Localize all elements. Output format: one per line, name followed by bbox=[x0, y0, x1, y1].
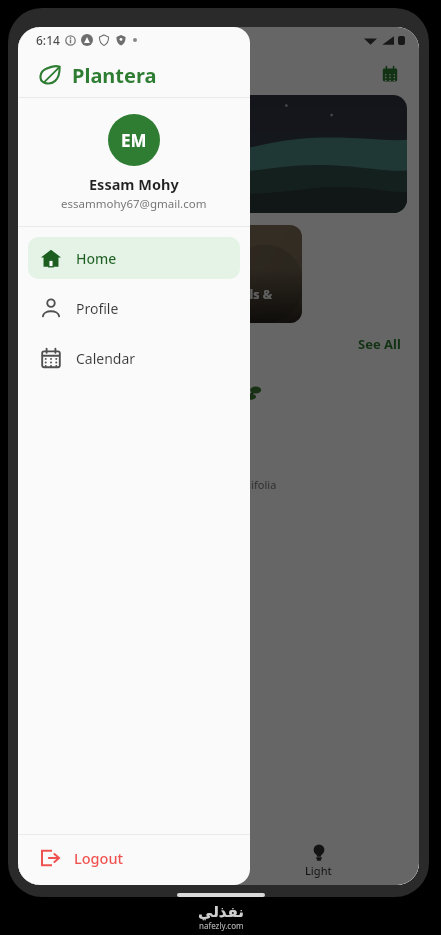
staticText: Flowers bbox=[38, 286, 87, 303]
button[interactable]: See All bbox=[354, 331, 405, 357]
staticText: Plantera bbox=[72, 62, 157, 89]
staticText: Essam Mohy bbox=[89, 174, 179, 194]
button[interactable]: Calendar bbox=[28, 337, 240, 379]
staticText: Gardening tools & bbox=[160, 286, 273, 303]
staticText: Light bbox=[305, 863, 332, 878]
button[interactable]: Logout bbox=[18, 835, 250, 881]
staticText: نفذلي bbox=[198, 903, 244, 920]
staticText: See All bbox=[358, 335, 401, 353]
button[interactable]: ZZ Plant bbox=[30, 363, 407, 493]
staticText: Profile bbox=[76, 299, 119, 318]
staticText: 6:14 bbox=[36, 32, 60, 48]
staticText: flowers bbox=[38, 303, 73, 317]
button[interactable] bbox=[30, 95, 407, 213]
staticText: nafezly.com bbox=[199, 920, 244, 931]
staticText: Home bbox=[76, 249, 117, 268]
button[interactable]: Profile bbox=[28, 287, 240, 329]
button[interactable]: Light bbox=[218, 835, 419, 885]
staticText: essammohy67@gmail.com bbox=[61, 196, 207, 212]
button[interactable]: Calendar bbox=[375, 59, 405, 89]
button[interactable]: My Plants bbox=[18, 835, 218, 885]
staticText: EM bbox=[121, 129, 147, 152]
button[interactable]: Gardening tools & bbox=[152, 225, 302, 323]
staticText: Logout bbox=[74, 848, 124, 868]
button[interactable]: Home bbox=[28, 237, 240, 279]
button[interactable]: Flowers bbox=[30, 225, 142, 323]
staticText: Zamioculcas zamiifolia bbox=[160, 477, 277, 492]
staticText: Calendar bbox=[76, 349, 136, 368]
staticText: My Plants bbox=[92, 863, 144, 878]
